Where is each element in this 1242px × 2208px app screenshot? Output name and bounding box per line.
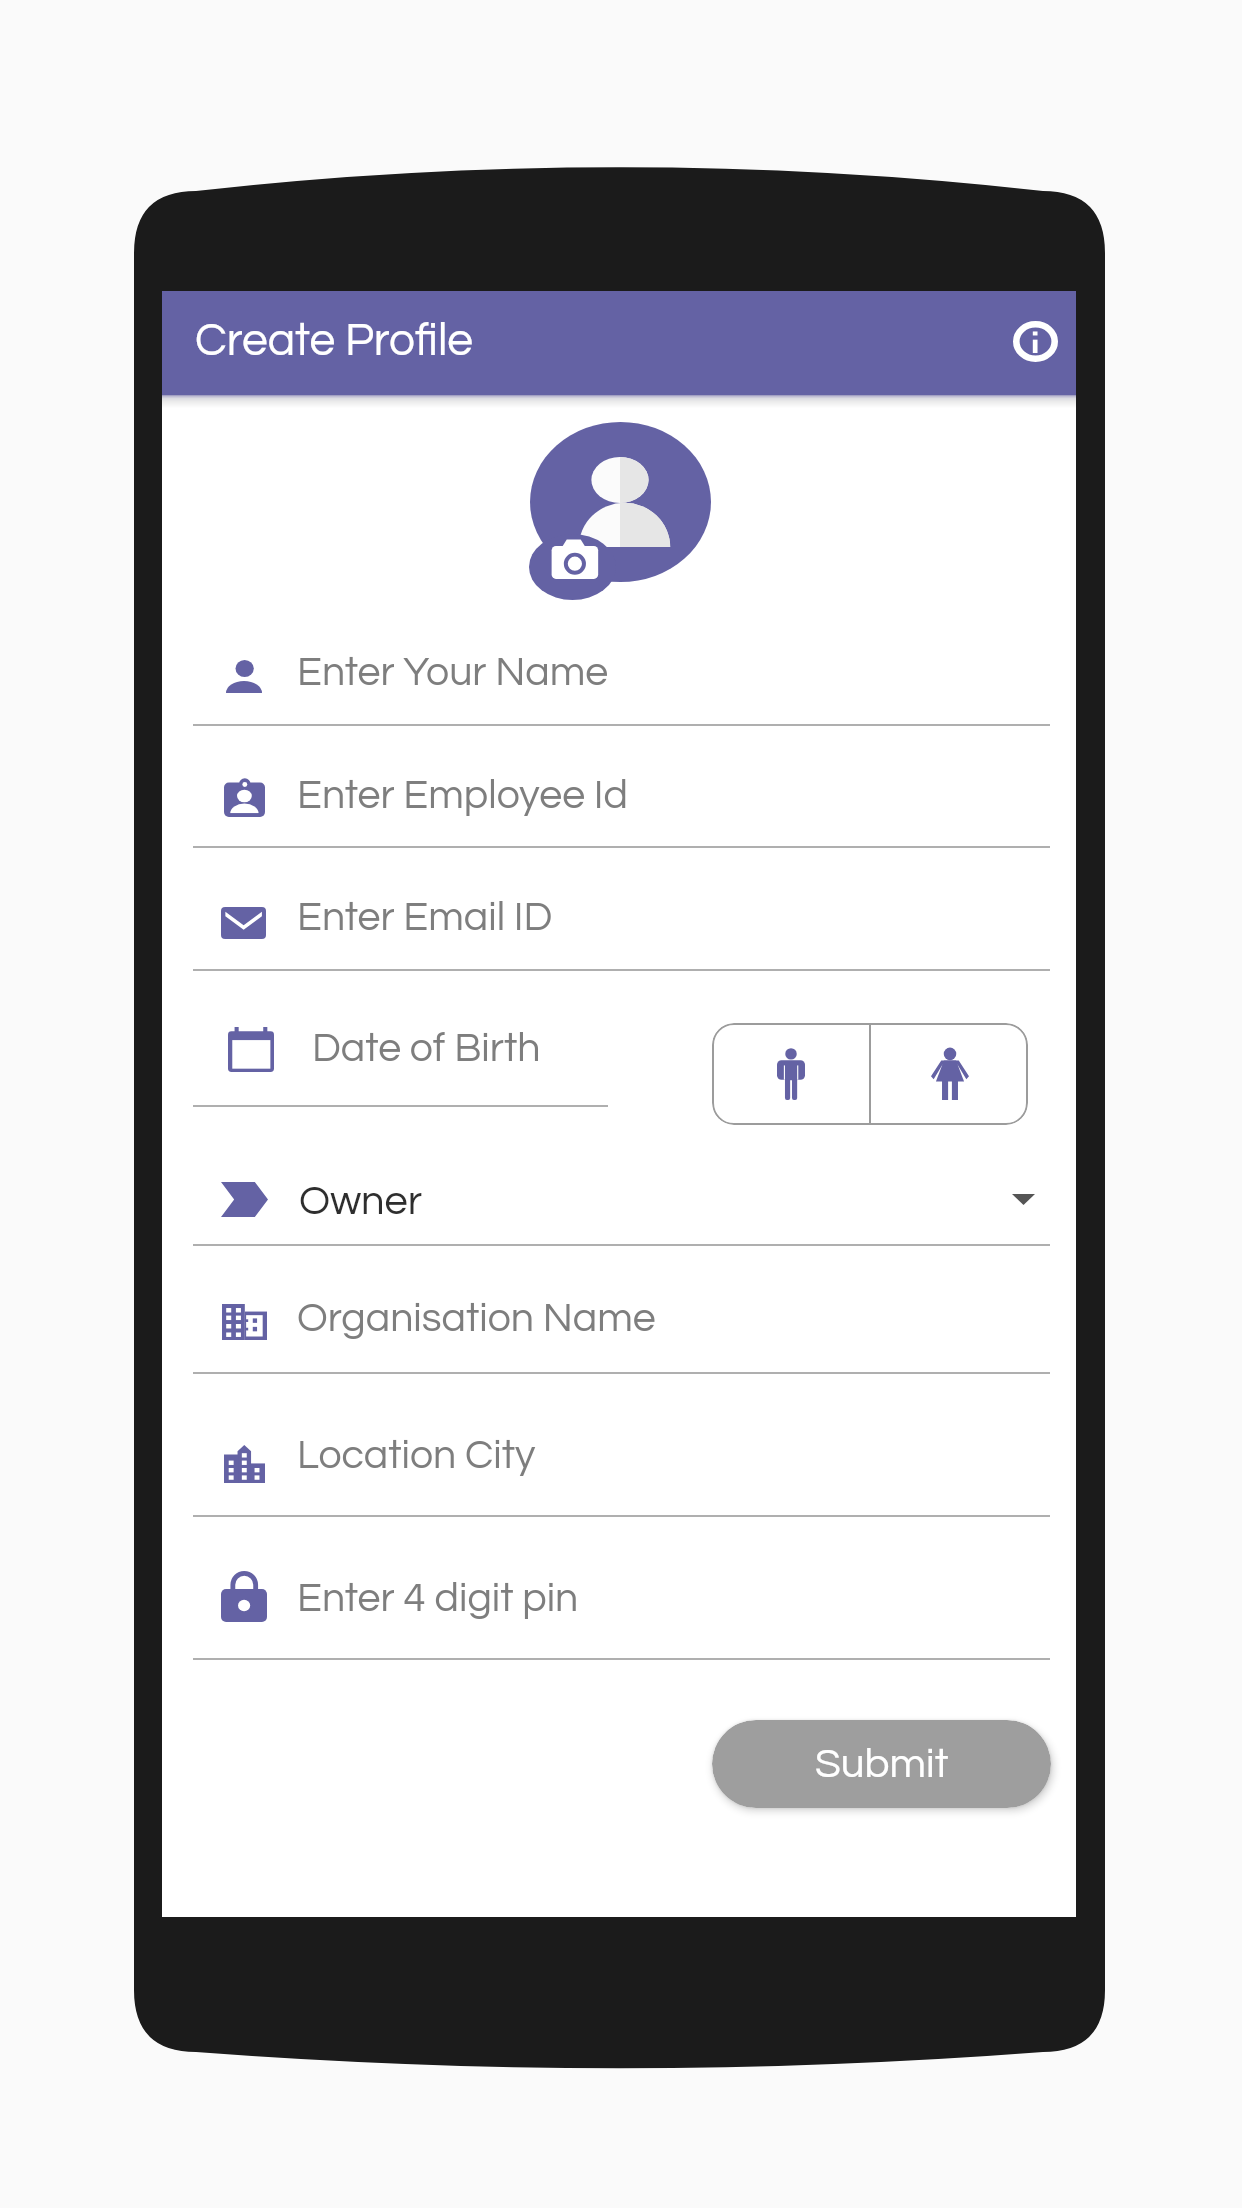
button[interactable] <box>193 1372 1050 1517</box>
button[interactable] <box>193 1515 1050 1660</box>
button[interactable] <box>193 1244 1050 1374</box>
staticText: Enter 4 digit pin <box>297 1577 579 1619</box>
staticText: Submit <box>815 1743 949 1786</box>
staticText: Enter Email ID <box>297 896 553 938</box>
button[interactable]: Take photo <box>529 534 616 600</box>
staticText: Enter Your Name <box>297 651 609 693</box>
button[interactable] <box>193 1115 1050 1244</box>
button[interactable] <box>193 724 1050 848</box>
button[interactable]: Female <box>871 1023 1028 1125</box>
button[interactable] <box>193 969 613 1105</box>
staticText: Owner <box>299 1180 423 1223</box>
button[interactable]: Male <box>712 1023 869 1125</box>
staticText: Enter Employee Id <box>297 774 628 816</box>
button[interactable] <box>193 600 1050 726</box>
button[interactable] <box>193 846 1050 971</box>
staticText: Organisation Name <box>297 1297 656 1339</box>
staticText: Create Profile <box>195 317 473 364</box>
staticText: Date of Birth <box>312 1027 541 1069</box>
staticText: Location City <box>297 1434 536 1476</box>
button[interactable]: Change profile photo <box>530 422 711 582</box>
button[interactable]: Info <box>1000 306 1070 376</box>
button[interactable]: Submit <box>712 1720 1051 1808</box>
